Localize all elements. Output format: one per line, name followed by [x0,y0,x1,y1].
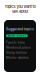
staticText: Suggested topics [6,27,34,31]
staticText: Family time [6,41,25,44]
button[interactable]: Family time [4,40,36,45]
button[interactable]: Work stress [6,34,28,37]
button[interactable]: Money worries [4,55,36,60]
staticText: Sleep routine [6,51,27,54]
button[interactable]: Weekend plans [4,45,36,50]
staticText: Weekend plans [6,46,31,49]
staticText: Money worries [6,56,29,59]
staticText: Work stress [7,34,26,37]
button[interactable]: Sleep routine [4,50,36,55]
staticText: talk about [12,9,28,14]
staticText: Topics you want to [4,4,35,9]
